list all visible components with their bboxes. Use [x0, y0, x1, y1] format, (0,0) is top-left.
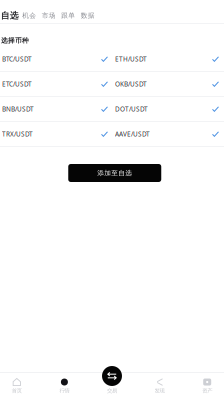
button[interactable]: 市场	[39, 8, 58, 23]
button[interactable]: 数据	[78, 8, 97, 23]
button[interactable]: TRX/USDT	[0, 122, 113, 146]
staticText: 添加至自选	[97, 169, 132, 177]
staticText: 资产	[202, 387, 212, 394]
button[interactable]: 跟单	[58, 8, 78, 23]
button[interactable]: 资产	[183, 373, 224, 400]
button[interactable]: 首页	[0, 373, 41, 400]
button[interactable]: 机会	[19, 8, 39, 23]
staticText: 交易	[107, 387, 117, 394]
staticText: 首页	[12, 387, 22, 394]
staticText: 数据	[81, 11, 95, 20]
staticText: 跟单	[61, 11, 75, 20]
button[interactable]: 发现	[136, 373, 183, 400]
staticText: 市场	[42, 11, 56, 20]
button[interactable]: 自选	[0, 8, 19, 23]
staticText: AAVE/USDT	[115, 130, 150, 138]
button[interactable]: ETC/USDT	[0, 72, 113, 96]
staticText: 自选	[1, 10, 19, 21]
staticText: 行情	[59, 387, 69, 394]
staticText: 发现	[155, 387, 165, 394]
button[interactable]: BTC/USDT	[0, 47, 113, 71]
staticText: OKB/USDT	[115, 80, 147, 88]
button[interactable]: 行情	[41, 373, 88, 400]
button[interactable]: ETH/USDT	[113, 47, 224, 71]
staticText: ETH/USDT	[115, 55, 147, 63]
staticText: 选择币种	[1, 36, 29, 45]
staticText: 机会	[22, 11, 36, 20]
staticText: DOT/USDT	[115, 105, 148, 113]
button[interactable]: AAVE/USDT	[113, 122, 224, 146]
button[interactable]: BNB/USDT	[0, 97, 113, 121]
staticText: ETC/USDT	[2, 80, 32, 88]
button[interactable]: DOT/USDT	[113, 97, 224, 121]
button[interactable]: 添加至自选	[68, 164, 161, 182]
button[interactable]: OKB/USDT	[113, 72, 224, 96]
staticText: BTC/USDT	[2, 55, 32, 63]
staticText: BNB/USDT	[2, 105, 34, 113]
staticText: TRX/USDT	[2, 130, 33, 138]
button[interactable]: 交易	[88, 373, 136, 400]
